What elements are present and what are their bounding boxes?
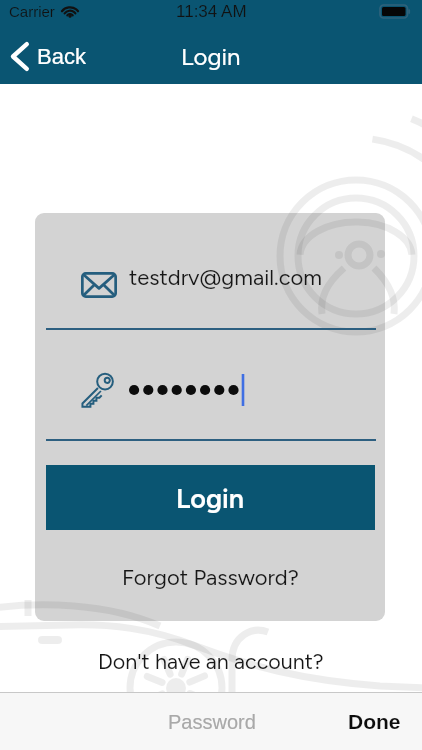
button[interactable]: Login <box>46 465 375 530</box>
staticText: Forgot Password? <box>122 564 299 590</box>
button[interactable]: Back <box>10 33 86 79</box>
staticText: Don't have an account? <box>98 649 324 675</box>
other: Email <box>81 272 117 298</box>
staticText: Carrier <box>9 3 55 20</box>
button[interactable]: Done <box>348 710 401 733</box>
other: Password <box>76 368 119 411</box>
staticText: Login <box>176 482 245 514</box>
staticText: 11:34 AM <box>176 2 247 21</box>
staticText: Back <box>37 44 86 69</box>
staticText: Login <box>181 42 241 71</box>
button[interactable]: Forgot Password? <box>35 560 385 594</box>
staticText: Password <box>168 711 256 733</box>
staticText: testdrv@gmail.com <box>129 264 323 290</box>
button[interactable]: Don't have an account? <box>0 645 422 679</box>
